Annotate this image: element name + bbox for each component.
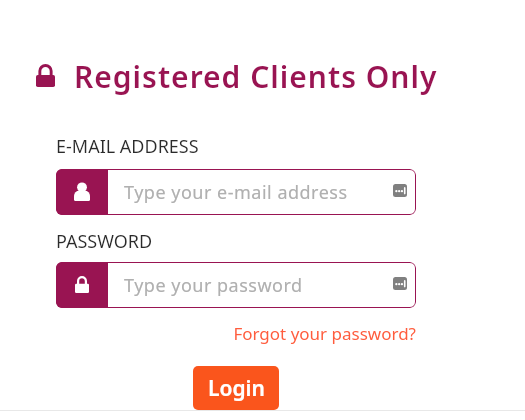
button[interactable]: Show saved passwords (393, 277, 407, 290)
staticText: Login (208, 374, 265, 403)
staticText: Type your e-mail address (124, 180, 348, 205)
staticText: PASSWORD (56, 229, 153, 254)
button[interactable]: Show saved passwords (393, 184, 407, 197)
staticText: E-MAIL ADDRESS (56, 134, 199, 159)
button[interactable]: Login (193, 366, 279, 410)
button[interactable]: Forgot your password? (233, 322, 416, 345)
button[interactable]: Type your password (56, 262, 416, 308)
button[interactable]: Type your e-mail address (56, 169, 416, 215)
staticText: Type your password (124, 273, 303, 298)
staticText: Registered Clients Only (74, 56, 438, 97)
